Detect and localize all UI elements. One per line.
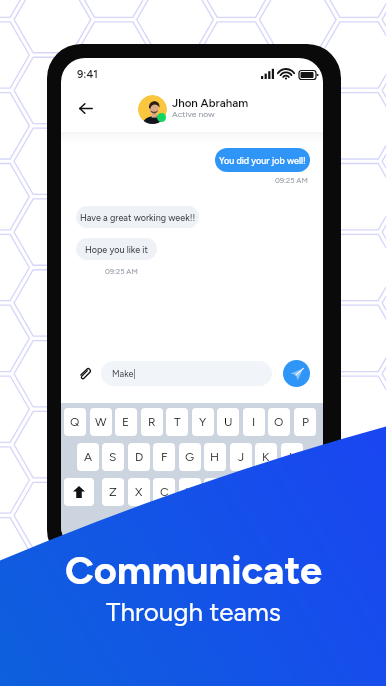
staticText: I — [252, 415, 256, 429]
staticText: Hope you like it — [85, 244, 148, 255]
staticText: Make| — [112, 368, 136, 379]
staticText: Z — [109, 485, 117, 499]
staticText: U — [224, 415, 233, 429]
staticText: H — [210, 450, 220, 464]
button[interactable]: Have a great working week!! — [76, 206, 199, 228]
button[interactable]: X — [128, 478, 150, 506]
button[interactable]: Attach — [67, 356, 101, 390]
staticText: W — [95, 415, 107, 429]
staticText: A — [84, 450, 93, 464]
staticText: P — [302, 415, 309, 429]
staticText: F — [161, 450, 168, 464]
staticText: R — [148, 415, 156, 429]
staticText: X — [135, 485, 143, 499]
button[interactable]: U — [217, 408, 239, 436]
button[interactable]: I — [243, 408, 265, 436]
staticText: Have a great working week!! — [80, 212, 196, 223]
button[interactable]: S — [102, 443, 124, 471]
button[interactable]: Make| — [101, 361, 272, 386]
staticText: You did your job well! — [219, 155, 306, 166]
button[interactable]: Z — [102, 478, 124, 506]
staticText: O — [274, 415, 284, 429]
button[interactable]: H — [204, 443, 226, 471]
button[interactable]: Hope you like it — [76, 238, 157, 260]
staticText: Q — [70, 415, 80, 429]
button[interactable]: O — [268, 408, 290, 436]
button[interactable]: D — [128, 443, 150, 471]
button[interactable]: Back — [68, 90, 104, 126]
staticText: L — [289, 450, 296, 464]
button[interactable]: G — [179, 443, 201, 471]
staticText: 09:25 AM — [105, 267, 138, 276]
staticText: V — [186, 485, 195, 499]
button[interactable]: A — [77, 443, 99, 471]
button[interactable]: J — [230, 443, 252, 471]
button[interactable]: R — [141, 408, 163, 436]
button[interactable]: Send — [283, 360, 310, 387]
button[interactable]: Shift — [64, 478, 94, 506]
staticText: K — [262, 450, 270, 464]
staticText: 9:41 — [77, 68, 98, 81]
staticText: 09:25 AM — [275, 176, 308, 185]
button[interactable]: Y — [192, 408, 214, 436]
button[interactable]: L — [281, 443, 303, 471]
button[interactable]: E — [115, 408, 137, 436]
button[interactable]: V — [179, 478, 201, 506]
button[interactable]: P — [294, 408, 316, 436]
staticText: T — [174, 415, 181, 429]
staticText: Jhon Abraham — [172, 96, 249, 110]
staticText: G — [185, 450, 195, 464]
button[interactable]: Q — [64, 408, 86, 436]
button[interactable]: F — [153, 443, 175, 471]
staticText: C — [160, 485, 169, 499]
button[interactable]: K — [255, 443, 277, 471]
staticText: J — [238, 450, 245, 464]
button[interactable]: T — [166, 408, 188, 436]
staticText: Y — [199, 415, 207, 429]
staticText: Active now — [172, 109, 215, 119]
staticText: Communicate — [65, 546, 322, 594]
staticText: Through teams — [106, 596, 281, 627]
staticText: D — [135, 450, 144, 464]
button[interactable]: You did your job well! — [215, 148, 310, 172]
button[interactable]: B — [204, 478, 226, 506]
staticText: S — [109, 450, 117, 464]
staticText: E — [122, 415, 130, 429]
button[interactable]: C — [153, 478, 175, 506]
button[interactable]: W — [90, 408, 112, 436]
